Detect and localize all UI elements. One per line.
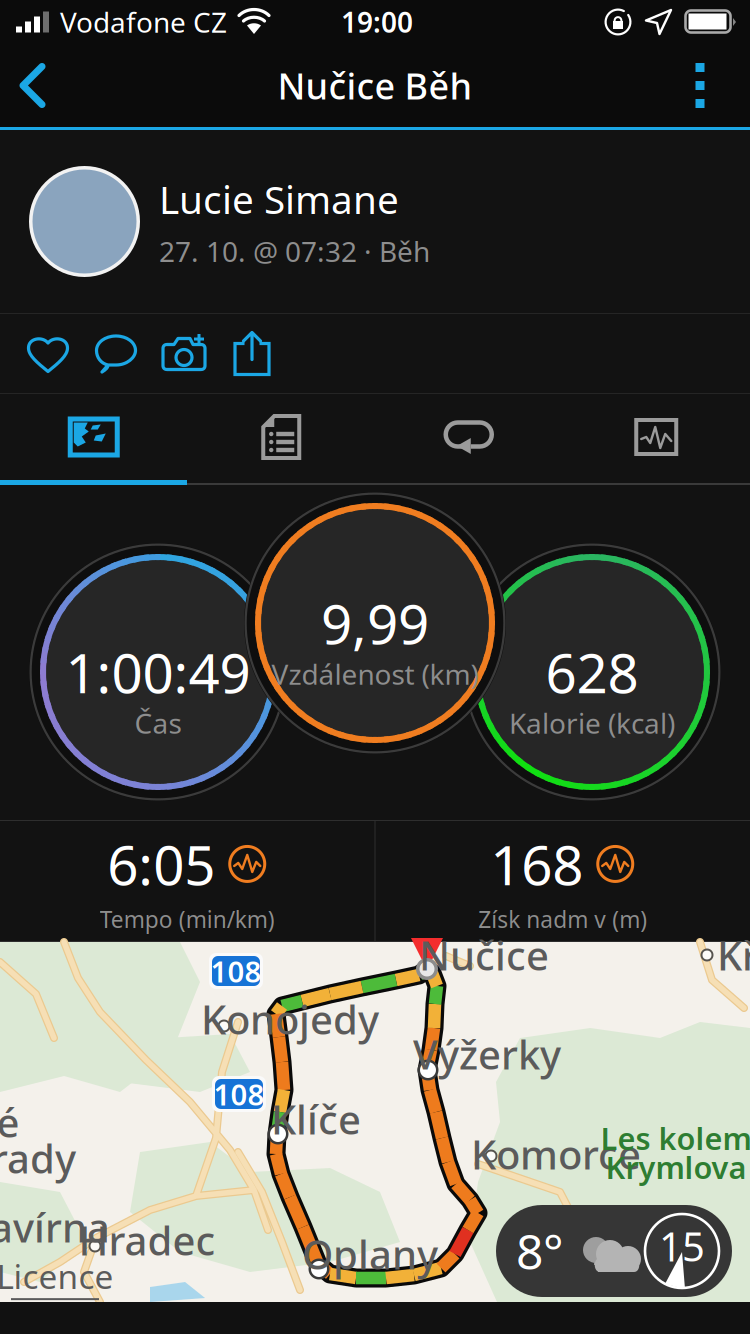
- staticText: Oplany: [302, 1227, 438, 1280]
- button[interactable]: Add photo: [150, 314, 218, 393]
- staticText: Hradec: [78, 1213, 215, 1266]
- staticText: 9,99: [321, 587, 429, 659]
- staticText: Vzdálenost (km): [271, 655, 478, 693]
- staticText: 8°: [516, 1219, 564, 1283]
- staticText: 108: [210, 951, 261, 990]
- staticText: é: [0, 1095, 19, 1148]
- staticText: Konojedy: [201, 992, 379, 1045]
- staticText: 19:00: [341, 3, 413, 41]
- button[interactable]: More options: [650, 44, 750, 127]
- staticText: Les kolem: [600, 1118, 750, 1158]
- staticText: Klíče: [271, 1092, 361, 1145]
- staticText: Havírna: [0, 1200, 110, 1253]
- button[interactable]: Details: [187, 394, 375, 480]
- button[interactable]: Comment: [82, 314, 150, 393]
- staticText: Krymlova: [605, 1147, 746, 1187]
- button[interactable]: Share: [218, 314, 286, 393]
- staticText: erady: [0, 1131, 76, 1184]
- staticText: Nučice Běh: [277, 62, 472, 109]
- staticText: Výžerky: [413, 1027, 561, 1080]
- staticText: 628: [545, 636, 638, 708]
- button[interactable]: Back: [0, 44, 66, 127]
- staticText: 108: [213, 1074, 264, 1113]
- staticText: Získ nadm v (m): [478, 904, 647, 934]
- button[interactable]: Charts: [562, 394, 750, 480]
- staticText: Kř: [717, 928, 750, 981]
- staticText: 168: [490, 828, 583, 900]
- staticText: Tempo (min/km): [100, 904, 275, 934]
- staticText: Licence: [0, 1254, 113, 1298]
- staticText: 1:00:49: [65, 636, 250, 708]
- staticText: Nučice: [419, 928, 549, 981]
- staticText: Kalorie (kcal): [509, 704, 675, 742]
- staticText: 27. 10. @ 07:32 · Běh: [159, 233, 430, 270]
- staticText: Čas: [134, 704, 181, 742]
- button[interactable]: Weather: [496, 1205, 732, 1297]
- staticText: Vodafone CZ: [60, 3, 227, 41]
- staticText: Komorce: [471, 1127, 641, 1180]
- staticText: 6:05: [107, 828, 215, 900]
- button[interactable]: Lucie Simane: [0, 130, 750, 313]
- button[interactable]: Map: [0, 394, 187, 480]
- button[interactable]: Laps: [375, 394, 562, 480]
- staticText: Lucie Simane: [159, 173, 399, 224]
- staticText: 15: [659, 1219, 705, 1272]
- button[interactable]: Like: [14, 314, 82, 393]
